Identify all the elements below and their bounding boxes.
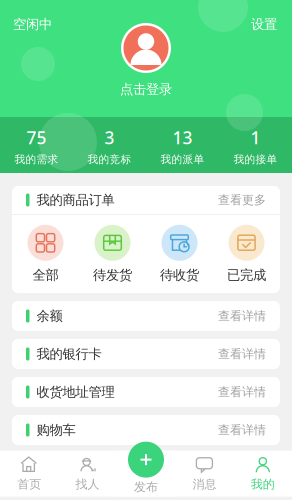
staticText: 空闲中 [13, 16, 52, 32]
button[interactable]: 找人 [58, 451, 117, 497]
staticText: 设置 [251, 16, 277, 32]
button[interactable]: 3 [73, 126, 146, 166]
staticText: 3 [104, 126, 114, 149]
staticText: 我的 [251, 477, 275, 491]
staticText: 找人 [76, 477, 100, 491]
staticText: 我的商品订单 [36, 192, 114, 208]
staticText: 发布 [134, 480, 158, 494]
staticText: 待发货 [93, 267, 132, 283]
button[interactable]: 设置 [249, 16, 279, 32]
button[interactable]: 我的银行卡 [12, 339, 280, 369]
staticText: 1 [250, 126, 260, 149]
button[interactable]: 待发货 [79, 225, 146, 283]
staticText: 13 [172, 126, 192, 149]
staticText: 消息 [192, 477, 216, 491]
button[interactable]: 1 [219, 126, 292, 166]
button[interactable]: 余额 [12, 301, 280, 331]
staticText: 全部 [32, 267, 58, 283]
staticText: 收货地址管理 [36, 384, 114, 400]
staticText: 点击登录 [120, 81, 172, 97]
staticText: 查看详情 [218, 423, 266, 437]
button[interactable]: 待收货 [146, 225, 213, 283]
button[interactable]: 购物车 [12, 415, 280, 445]
staticText: 已完成 [227, 267, 266, 283]
button[interactable]: 已完成 [213, 225, 280, 283]
button[interactable]: 75 [0, 126, 73, 166]
staticText: 查看详情 [218, 385, 266, 399]
button[interactable]: 点击登录 [120, 23, 172, 97]
button[interactable]: 查看更多 [218, 193, 266, 207]
button[interactable]: 我的 [234, 451, 292, 497]
button[interactable]: 消息 [175, 451, 234, 497]
staticText: 我的银行卡 [36, 346, 101, 362]
staticText: 查看更多 [218, 193, 266, 207]
button[interactable]: 发布 [120, 442, 172, 494]
staticText: 75 [26, 126, 46, 149]
button[interactable]: 首页 [0, 451, 58, 497]
staticText: 查看详情 [218, 309, 266, 323]
staticText: 余额 [36, 308, 62, 324]
button[interactable]: 13 [146, 126, 219, 166]
button[interactable]: 收货地址管理 [12, 377, 280, 407]
staticText: 查看详情 [218, 347, 266, 361]
staticText: 我的接单 [233, 153, 277, 166]
staticText: 购物车 [36, 422, 75, 438]
staticText: 首页 [17, 477, 41, 491]
staticText: 我的派单 [160, 153, 204, 166]
staticText: 我的竞标 [87, 153, 131, 166]
button[interactable]: 全部 [12, 225, 79, 283]
staticText: 待收货 [160, 267, 199, 283]
staticText: 我的需求 [14, 153, 58, 166]
